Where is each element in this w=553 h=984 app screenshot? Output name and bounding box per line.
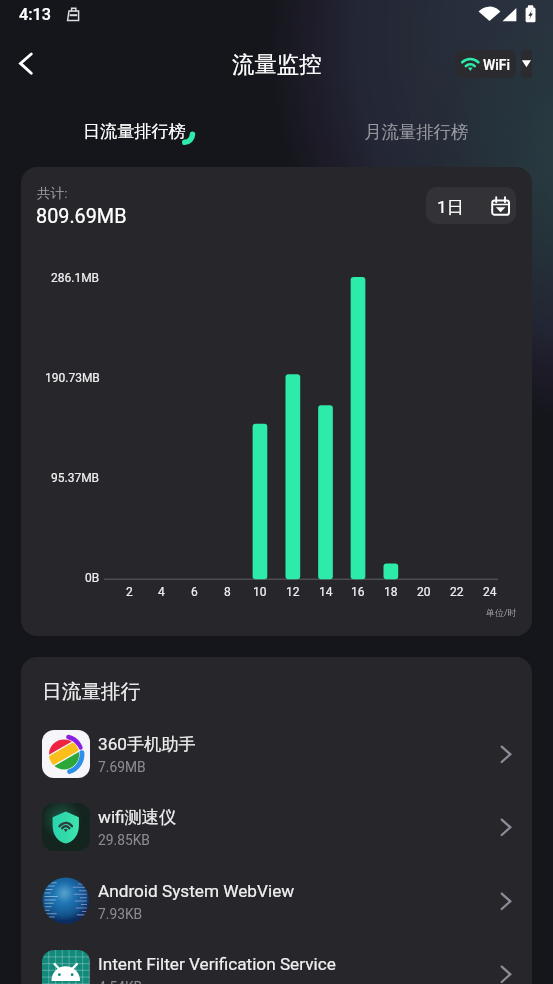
staticText: 29.85KB [98, 832, 150, 848]
button[interactable]: 1日 [426, 187, 516, 224]
staticText: 6 [191, 585, 198, 599]
staticText: 8 [224, 585, 231, 599]
staticText: 4 [158, 585, 165, 599]
staticText: 流量监控 [232, 50, 322, 78]
button[interactable]: WiFi [455, 50, 516, 78]
staticText: 20 [417, 585, 431, 599]
staticText: 日流量排行榜 [83, 121, 186, 143]
staticText: 2 [126, 585, 133, 599]
staticText: 809.69MB [36, 205, 127, 228]
staticText: 190.73MB [45, 371, 100, 385]
button[interactable]: Back [2, 41, 47, 86]
staticText: 16 [351, 585, 365, 599]
staticText: WiFi [483, 57, 510, 73]
button[interactable]: wifi测速仪 [21, 790, 532, 864]
staticText: Android System WebView [98, 881, 295, 901]
staticText: 22 [450, 585, 464, 599]
staticText: 7.69MB [98, 759, 146, 775]
button[interactable]: 360手机助手 [21, 717, 532, 791]
staticText: 4.54KB [98, 979, 143, 984]
staticText: Intent Filter Verification Service [98, 954, 336, 974]
staticText: 360手机助手 [98, 733, 196, 755]
staticText: 10 [253, 585, 267, 599]
button[interactable]: More network options [521, 50, 532, 78]
staticText: 单位/时 [486, 607, 517, 618]
staticText: 24 [483, 585, 497, 599]
staticText: 95.37MB [51, 471, 100, 485]
staticText: 日流量排行 [42, 679, 141, 704]
staticText: 1日 [437, 196, 464, 218]
staticText: 14 [319, 585, 333, 599]
staticText: 0B [85, 571, 100, 585]
staticText: 286.1MB [51, 271, 100, 285]
button[interactable]: Intent Filter Verification Service [21, 937, 532, 984]
staticText: 4:13 [19, 5, 52, 24]
staticText: 共计: [37, 185, 68, 202]
button[interactable]: 月流量排行榜 [277, 96, 553, 166]
staticText: 12 [286, 585, 300, 599]
button[interactable]: Android System WebView [21, 864, 532, 938]
staticText: wifi测速仪 [98, 806, 177, 828]
staticText: 18 [384, 585, 398, 599]
staticText: 7.93KB [98, 906, 143, 922]
staticText: 月流量排行榜 [364, 121, 469, 143]
button[interactable]: 日流量排行榜 [0, 96, 277, 166]
